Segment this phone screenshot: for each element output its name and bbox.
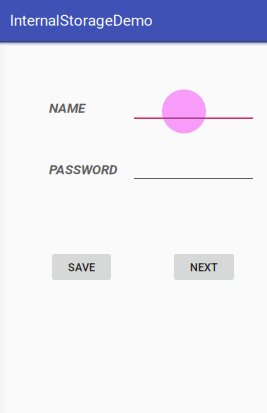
staticText: NEXT [190, 261, 218, 274]
staticText: NAME [49, 100, 85, 116]
staticText: InternalStorageDemo [10, 11, 153, 29]
button[interactable]: SAVE [52, 254, 111, 280]
staticText: SAVE [68, 261, 95, 274]
staticText: PASSWORD [49, 162, 117, 177]
button[interactable]: NEXT [174, 254, 234, 280]
